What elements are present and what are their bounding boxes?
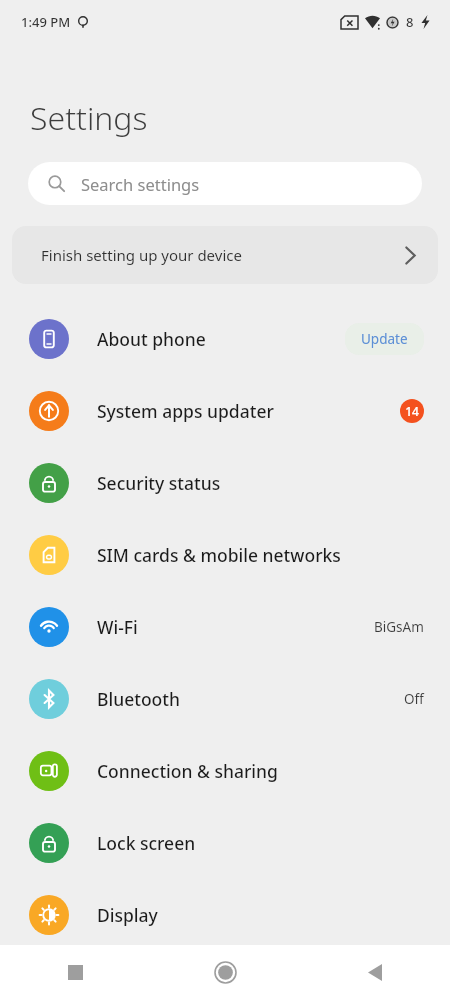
- button[interactable]: SIM cards & mobile networks: [0, 519, 450, 591]
- staticText: Security status: [97, 471, 221, 495]
- staticText: Bluetooth: [97, 687, 180, 711]
- staticText: 8: [406, 13, 414, 31]
- button[interactable]: Search settings: [28, 162, 422, 205]
- button[interactable]: Wi-Fi: [0, 591, 450, 663]
- staticText: Wi-Fi: [97, 615, 138, 639]
- staticText: Off: [404, 690, 424, 708]
- button[interactable]: Bluetooth: [0, 663, 450, 735]
- staticText: Settings: [30, 96, 148, 140]
- button[interactable]: Lock screen: [0, 807, 450, 879]
- staticText: System apps updater: [97, 399, 274, 423]
- staticText: SIM cards & mobile networks: [97, 543, 341, 567]
- staticText: Finish setting up your device: [41, 245, 242, 265]
- button[interactable]: System apps updater: [0, 375, 450, 447]
- button[interactable]: Finish setting up your device: [12, 226, 438, 284]
- staticText: Lock screen: [97, 831, 196, 855]
- staticText: About phone: [97, 327, 206, 351]
- staticText: 14: [405, 403, 419, 419]
- button[interactable]: Security status: [0, 447, 450, 519]
- button[interactable]: Connection & sharing: [0, 735, 450, 807]
- staticText: 1:49 PM: [21, 13, 71, 31]
- staticText: Update: [361, 330, 408, 348]
- button[interactable]: Update: [345, 323, 424, 355]
- button[interactable]: Back: [300, 945, 450, 1000]
- staticText: Search settings: [81, 173, 200, 195]
- button[interactable]: Display: [0, 879, 450, 951]
- staticText: Connection & sharing: [97, 759, 278, 783]
- button[interactable]: Home: [150, 945, 300, 1000]
- staticText: Display: [97, 903, 158, 927]
- staticText: BiGsAm: [374, 618, 424, 636]
- button[interactable]: About phone: [0, 303, 450, 375]
- button[interactable]: Recent apps: [0, 945, 150, 1000]
